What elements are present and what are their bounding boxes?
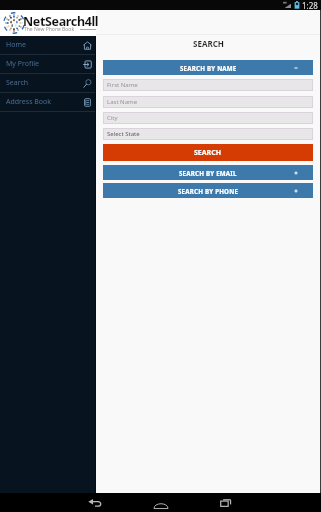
staticText: SEARCH — [193, 38, 224, 49]
staticText: Search — [6, 78, 29, 88]
staticText: SEARCH BY PHONE — [178, 187, 239, 195]
button[interactable]: First Name — [103, 79, 313, 91]
staticText: Address Book — [6, 97, 52, 107]
button[interactable]: SEARCH BY EMAIL — [103, 165, 313, 180]
staticText: SEARCH BY NAME — [180, 64, 237, 72]
button[interactable]: Select State — [103, 128, 313, 140]
button[interactable]: Recent apps — [213, 493, 239, 512]
button[interactable]: Home — [148, 493, 174, 512]
staticText: 1:28 — [302, 0, 318, 10]
staticText: City — [107, 114, 118, 122]
button[interactable]: Back — [82, 493, 108, 512]
button[interactable]: City — [103, 112, 313, 124]
staticText: The New Phone Book — [24, 26, 75, 33]
button[interactable]: Search — [0, 74, 95, 93]
button[interactable]: SEARCH — [103, 144, 313, 161]
staticText: SEARCH — [194, 148, 222, 158]
button[interactable]: SEARCH BY PHONE — [103, 183, 313, 198]
staticText: SEARCH BY EMAIL — [179, 169, 237, 177]
staticText: First Name — [107, 81, 138, 89]
staticText: Select State — [107, 130, 140, 138]
staticText: Last Name — [107, 98, 138, 106]
button[interactable]: Home — [0, 36, 95, 55]
button[interactable]: SEARCH BY NAME — [103, 60, 313, 75]
staticText: My Profile — [6, 59, 39, 69]
button[interactable]: Address Book — [0, 93, 95, 112]
staticText: Home — [6, 40, 26, 50]
staticText: NetSearch4ll — [23, 13, 99, 30]
button[interactable]: Last Name — [103, 96, 313, 108]
button[interactable]: My Profile — [0, 55, 95, 74]
